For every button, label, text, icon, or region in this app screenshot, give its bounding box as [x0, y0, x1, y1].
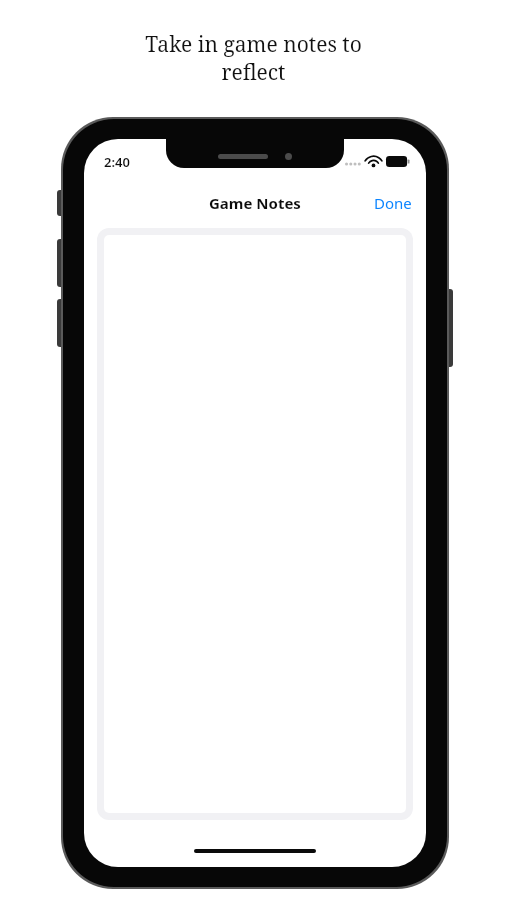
staticText: Done [374, 193, 412, 213]
staticText: Game Notes [209, 193, 301, 213]
staticText: Take in game notes to reflect [0, 30, 507, 86]
button[interactable] [97, 228, 413, 820]
staticText: 2:40 [104, 153, 130, 171]
button[interactable]: Done [360, 185, 426, 221]
